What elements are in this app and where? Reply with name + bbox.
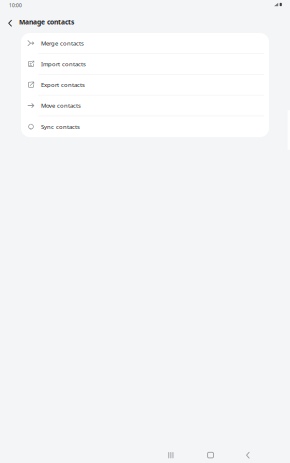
button[interactable]: Import contacts xyxy=(21,54,269,75)
button[interactable]: Sync contacts xyxy=(21,116,269,137)
button[interactable]: Export contacts xyxy=(21,75,269,95)
button[interactable]: Back xyxy=(229,446,290,463)
button[interactable]: Merge contacts xyxy=(21,33,269,54)
staticText: Import contacts xyxy=(41,60,86,68)
button[interactable]: Home xyxy=(190,446,229,463)
button[interactable]: Move contacts xyxy=(21,95,269,116)
staticText: Export contacts xyxy=(41,81,85,89)
staticText: Merge contacts xyxy=(41,39,84,47)
button[interactable]: Back xyxy=(0,13,19,31)
staticText: 10:00 xyxy=(9,2,22,9)
staticText: Manage contacts xyxy=(19,17,74,27)
staticText: Sync contacts xyxy=(41,123,80,131)
button[interactable]: Recents xyxy=(152,446,190,463)
staticText: Move contacts xyxy=(41,102,81,110)
